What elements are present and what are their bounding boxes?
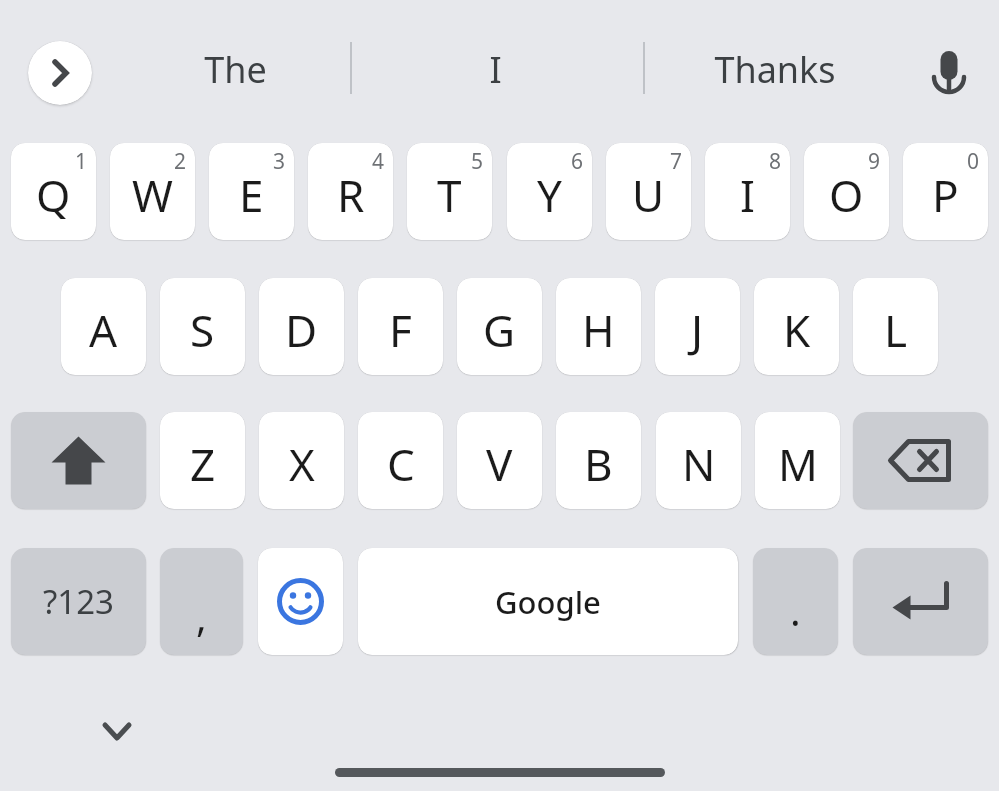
button[interactable]: G [457, 278, 542, 375]
staticText: Google [495, 581, 601, 623]
button[interactable]: N [656, 412, 741, 509]
button[interactable]: W [110, 143, 195, 240]
button[interactable]: D [259, 278, 344, 375]
button[interactable]: Voice input [915, 39, 983, 107]
button[interactable]: O [804, 143, 889, 240]
button[interactable]: Enter [853, 548, 988, 655]
button[interactable]: P [903, 143, 988, 240]
staticText: 6 [571, 147, 584, 176]
button[interactable]: Shift [11, 412, 146, 509]
staticText: . [790, 583, 801, 637]
button[interactable]: T [407, 143, 492, 240]
button[interactable]: Thanks [660, 30, 890, 108]
staticText: W [132, 165, 173, 225]
button[interactable]: The [120, 30, 350, 108]
staticText: I [489, 45, 502, 94]
staticText: 9 [868, 147, 881, 176]
button[interactable]: I [705, 143, 790, 240]
button[interactable]: Hide keyboard [88, 705, 146, 757]
staticText: P [932, 165, 959, 225]
staticText: Thanks [714, 45, 836, 94]
button[interactable]: V [457, 412, 542, 509]
button[interactable]: C [358, 412, 443, 509]
button[interactable]: A [61, 278, 146, 375]
staticText: F [389, 300, 412, 360]
staticText: D [285, 300, 318, 360]
staticText: ?123 [43, 579, 114, 624]
button[interactable]: . [753, 548, 838, 655]
button[interactable]: E [209, 143, 294, 240]
staticText: K [783, 300, 811, 360]
staticText: B [584, 434, 613, 494]
button[interactable]: M [755, 412, 840, 509]
button[interactable]: I [400, 30, 590, 108]
staticText: Y [537, 165, 562, 225]
staticText: E [239, 165, 264, 225]
staticText: H [582, 300, 615, 360]
staticText: 5 [471, 147, 484, 176]
staticText: O [829, 165, 864, 225]
staticText: 8 [769, 147, 782, 176]
button[interactable]: J [655, 278, 740, 375]
staticText: R [337, 165, 365, 225]
staticText: N [682, 434, 716, 494]
button[interactable]: H [556, 278, 641, 375]
staticText: The [204, 45, 267, 94]
button[interactable]: Emoji [258, 548, 343, 655]
button[interactable]: , [160, 548, 243, 655]
button[interactable]: R [308, 143, 393, 240]
staticText: 2 [174, 147, 187, 176]
staticText: J [691, 300, 704, 360]
button[interactable]: Z [160, 412, 245, 509]
button[interactable]: U [606, 143, 691, 240]
staticText: G [483, 300, 516, 360]
button[interactable]: L [853, 278, 938, 375]
staticText: Q [36, 165, 71, 225]
button[interactable]: S [160, 278, 245, 375]
staticText: I [740, 165, 755, 225]
staticText: 1 [75, 147, 88, 176]
button[interactable]: X [259, 412, 344, 509]
staticText: L [884, 300, 908, 360]
button[interactable]: Backspace [853, 412, 988, 509]
staticText: , [196, 589, 207, 643]
staticText: S [190, 300, 215, 360]
staticText: M [778, 434, 818, 494]
button[interactable]: Y [507, 143, 592, 240]
button[interactable]: K [754, 278, 839, 375]
staticText: 7 [670, 147, 683, 176]
staticText: 3 [273, 147, 286, 176]
staticText: V [486, 434, 513, 494]
button[interactable]: ?123 [11, 548, 146, 655]
staticText: 0 [967, 147, 980, 176]
staticText: X [289, 434, 315, 494]
staticText: U [632, 165, 665, 225]
button[interactable]: B [556, 412, 641, 509]
button[interactable]: Expand toolbar [28, 41, 92, 105]
staticText: 4 [372, 147, 385, 176]
staticText: C [387, 434, 415, 494]
button[interactable]: F [358, 278, 443, 375]
staticText: Z [190, 434, 216, 494]
button[interactable]: Q [11, 143, 96, 240]
staticText: T [437, 165, 462, 225]
staticText: A [89, 300, 118, 360]
button[interactable]: Google [358, 548, 738, 655]
